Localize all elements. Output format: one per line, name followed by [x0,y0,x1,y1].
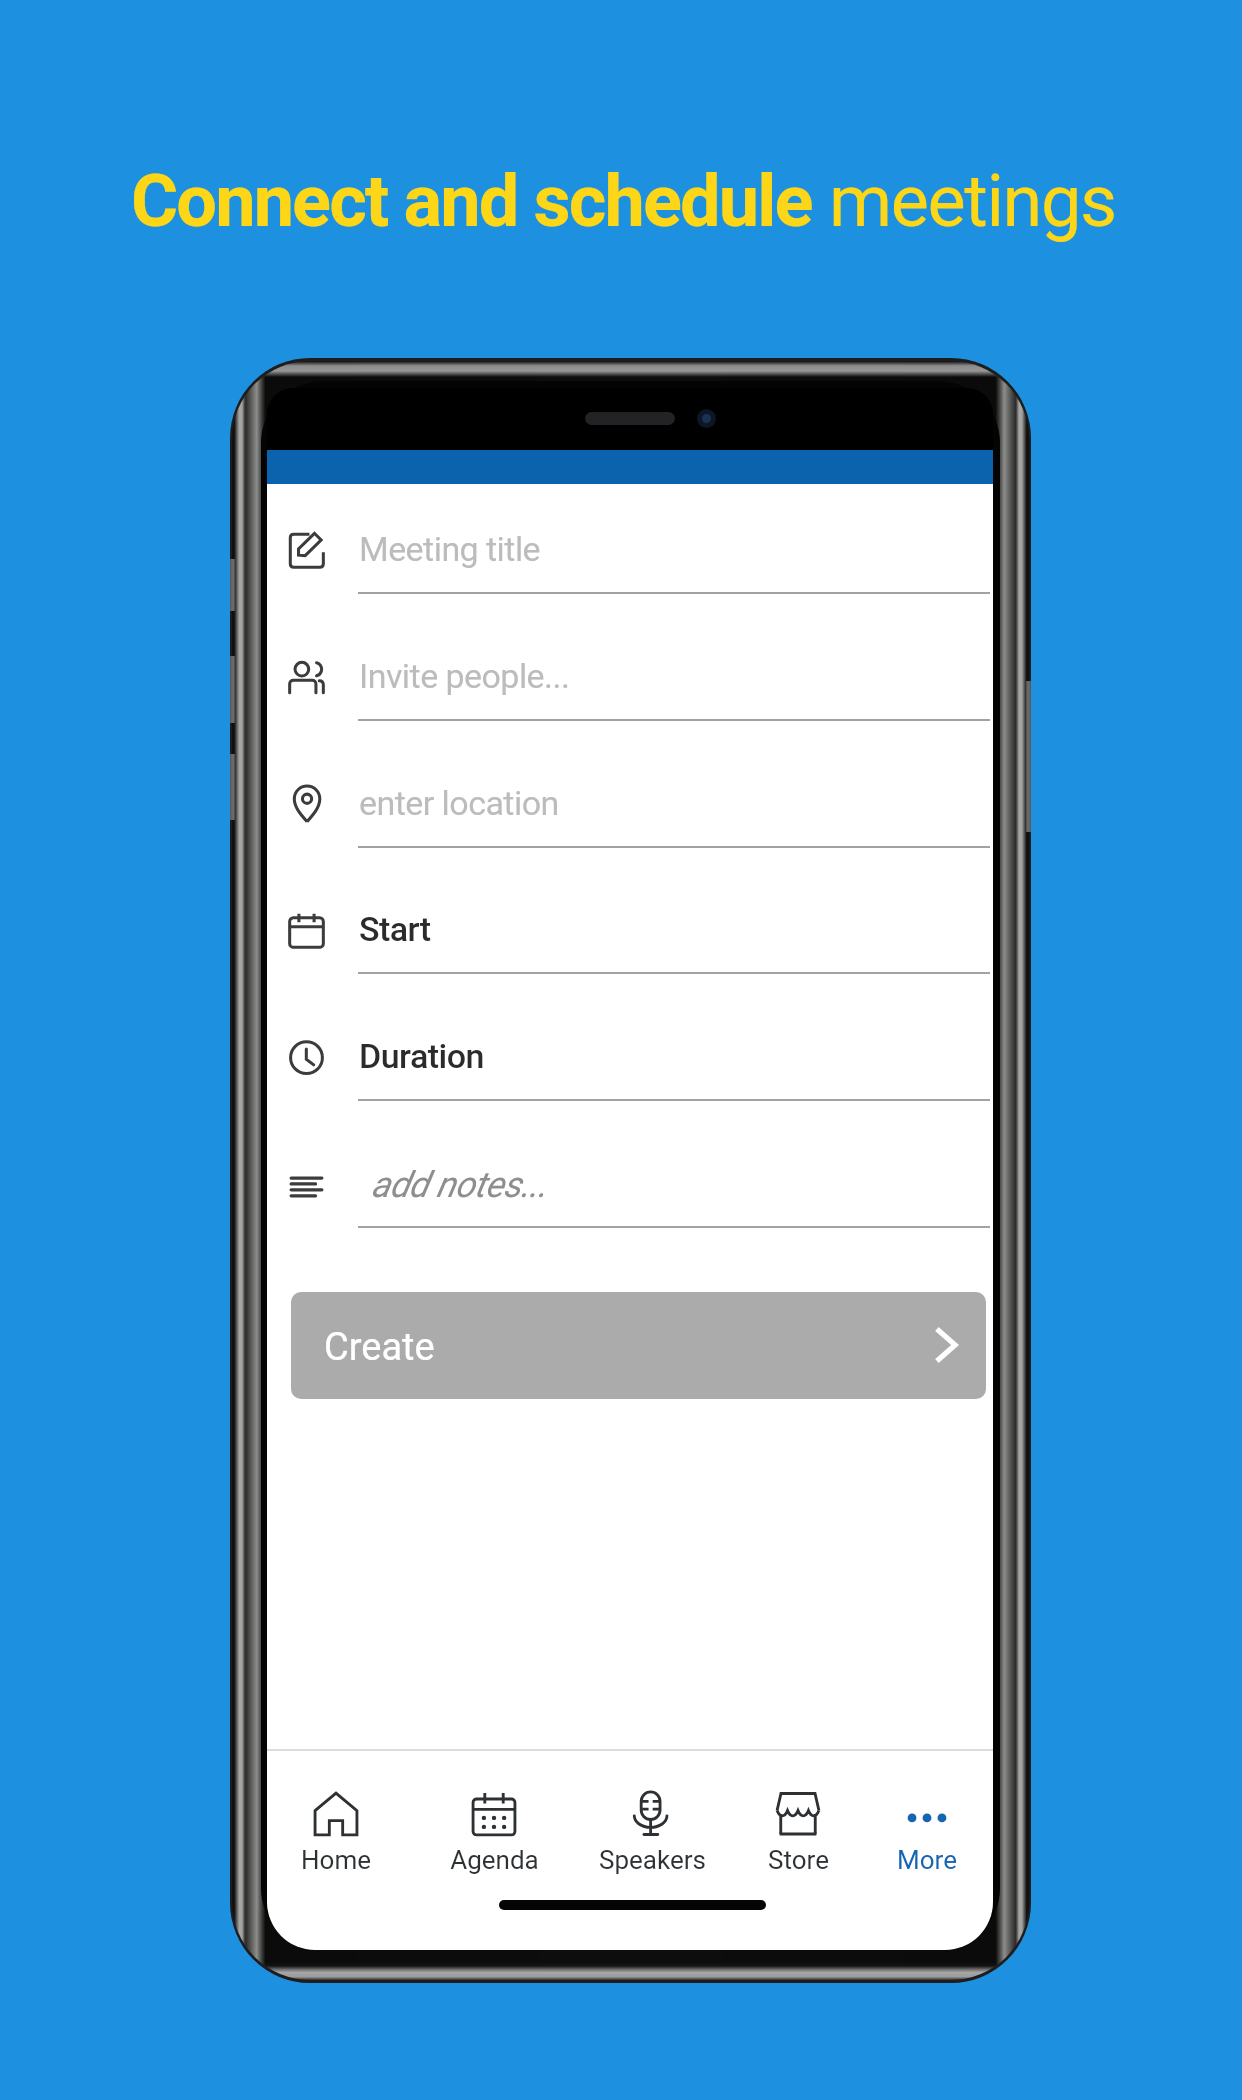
staticText: Connect and schedule [131,159,812,243]
button[interactable]: Add notes [267,1120,993,1246]
button[interactable]: More [853,1778,993,1878]
staticText: More [897,1845,957,1875]
staticText: Agenda [450,1845,539,1875]
button[interactable]: Duration [267,993,993,1119]
staticText: Start [359,909,431,949]
staticText: meetings [829,159,1116,243]
button[interactable]: Home [267,1778,410,1878]
button[interactable]: Start [267,866,993,992]
button[interactable]: Store [724,1778,872,1878]
staticText: enter location [359,783,559,823]
button[interactable]: Speakers [578,1778,726,1878]
button[interactable]: Meeting title [267,486,993,612]
staticText: Store [768,1845,829,1875]
staticText: Invite people... [359,656,570,696]
staticText: Meeting title [359,529,541,569]
button[interactable]: Enter location [267,740,993,866]
button[interactable]: Invite people [267,613,993,739]
staticText: Speakers [599,1845,706,1875]
button[interactable]: Create [291,1292,986,1399]
staticText: Create [324,1325,435,1370]
button[interactable]: Agenda [420,1778,568,1878]
staticText: add notes... [371,1164,547,1206]
staticText: Home [301,1845,371,1875]
staticText: Duration [359,1036,484,1076]
